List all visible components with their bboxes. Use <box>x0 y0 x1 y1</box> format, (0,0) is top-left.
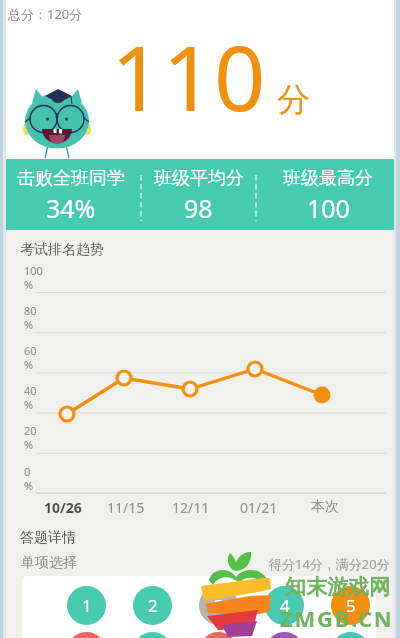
staticText: 分 <box>277 79 310 121</box>
staticText: 98 <box>184 191 213 225</box>
button[interactable] <box>331 632 370 638</box>
button[interactable]: 4 <box>265 586 304 625</box>
staticText: 100 <box>24 263 43 278</box>
button[interactable] <box>133 632 172 638</box>
button[interactable] <box>199 632 238 638</box>
staticText: 80 <box>24 303 37 318</box>
staticText: % <box>24 397 34 412</box>
staticText: 考试排名趋势 <box>20 241 104 259</box>
staticText: 3 <box>214 594 224 617</box>
staticText: 总分：120分 <box>8 5 83 23</box>
staticText: 单项选择 <box>21 554 77 572</box>
staticText: 10/26 <box>44 498 82 517</box>
staticText: % <box>24 277 34 292</box>
staticText: 110 <box>111 15 266 138</box>
staticText: 1 <box>82 594 92 617</box>
staticText: 4 <box>280 594 290 617</box>
staticText: 60 <box>24 343 37 358</box>
staticText: 5 <box>346 594 356 617</box>
staticText: 34% <box>46 191 96 225</box>
staticText: 12/11 <box>172 498 210 517</box>
staticText: 班级最高分 <box>283 167 373 190</box>
staticText: 班级平均分 <box>154 167 244 190</box>
staticText: 本次 <box>311 498 339 516</box>
staticText: 40 <box>24 383 37 398</box>
staticText: 答题详情 <box>20 529 76 547</box>
staticText: 0 <box>24 464 31 479</box>
staticText: 2 <box>148 594 158 617</box>
staticText: 得分14分，满分20分 <box>269 555 390 573</box>
button[interactable]: 5 <box>331 586 370 625</box>
button[interactable]: 1 <box>67 586 106 625</box>
button[interactable]: 2 <box>133 586 172 625</box>
staticText: % <box>24 437 34 452</box>
staticText: 知末游戏网 <box>285 574 390 600</box>
staticText: % <box>24 317 34 332</box>
button[interactable]: 3 <box>199 586 238 625</box>
staticText: ZMGB.CN <box>280 603 394 633</box>
staticText: 11/15 <box>107 498 145 517</box>
staticText: 击败全班同学 <box>17 167 125 190</box>
button[interactable] <box>67 632 106 638</box>
staticText: 100 <box>307 191 350 225</box>
staticText: 01/21 <box>240 498 278 517</box>
staticText: 20 <box>24 423 37 438</box>
staticText: % <box>24 478 34 493</box>
button[interactable] <box>265 632 304 638</box>
staticText: % <box>24 357 34 372</box>
